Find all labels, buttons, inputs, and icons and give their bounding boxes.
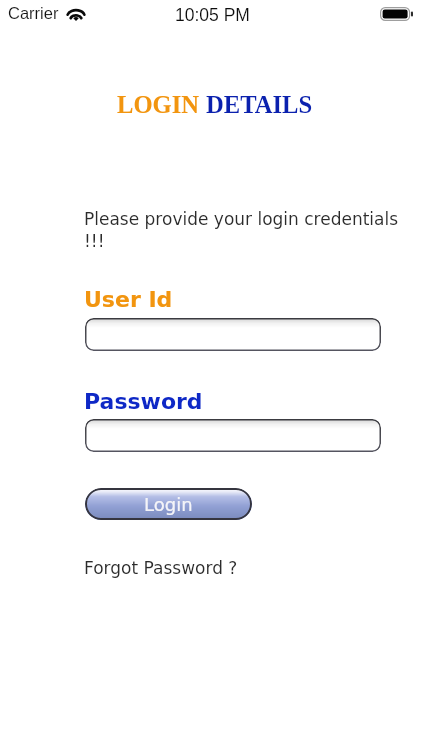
- staticText: Please provide your login credentials: [84, 209, 399, 229]
- button[interactable]: Password input field: [85, 419, 381, 452]
- staticText: Login: [144, 494, 193, 515]
- staticText: LOGIN: [117, 91, 206, 118]
- staticText: Forgot Password ?: [84, 558, 238, 578]
- staticText: User Id: [84, 287, 173, 313]
- staticText: 10:05 PM: [175, 5, 250, 25]
- staticText: Password: [84, 389, 203, 415]
- button[interactable]: User Id input field: [85, 318, 381, 351]
- staticText: !!!: [84, 231, 105, 251]
- other: Wi-Fi signal: [66, 5, 86, 21]
- staticText: DETAILS: [206, 91, 313, 118]
- staticText: Carrier: [8, 4, 59, 22]
- button[interactable]: Login: [85, 488, 252, 520]
- button[interactable]: Forgot Password ?: [78, 552, 244, 584]
- other: Battery full: [380, 7, 413, 21]
